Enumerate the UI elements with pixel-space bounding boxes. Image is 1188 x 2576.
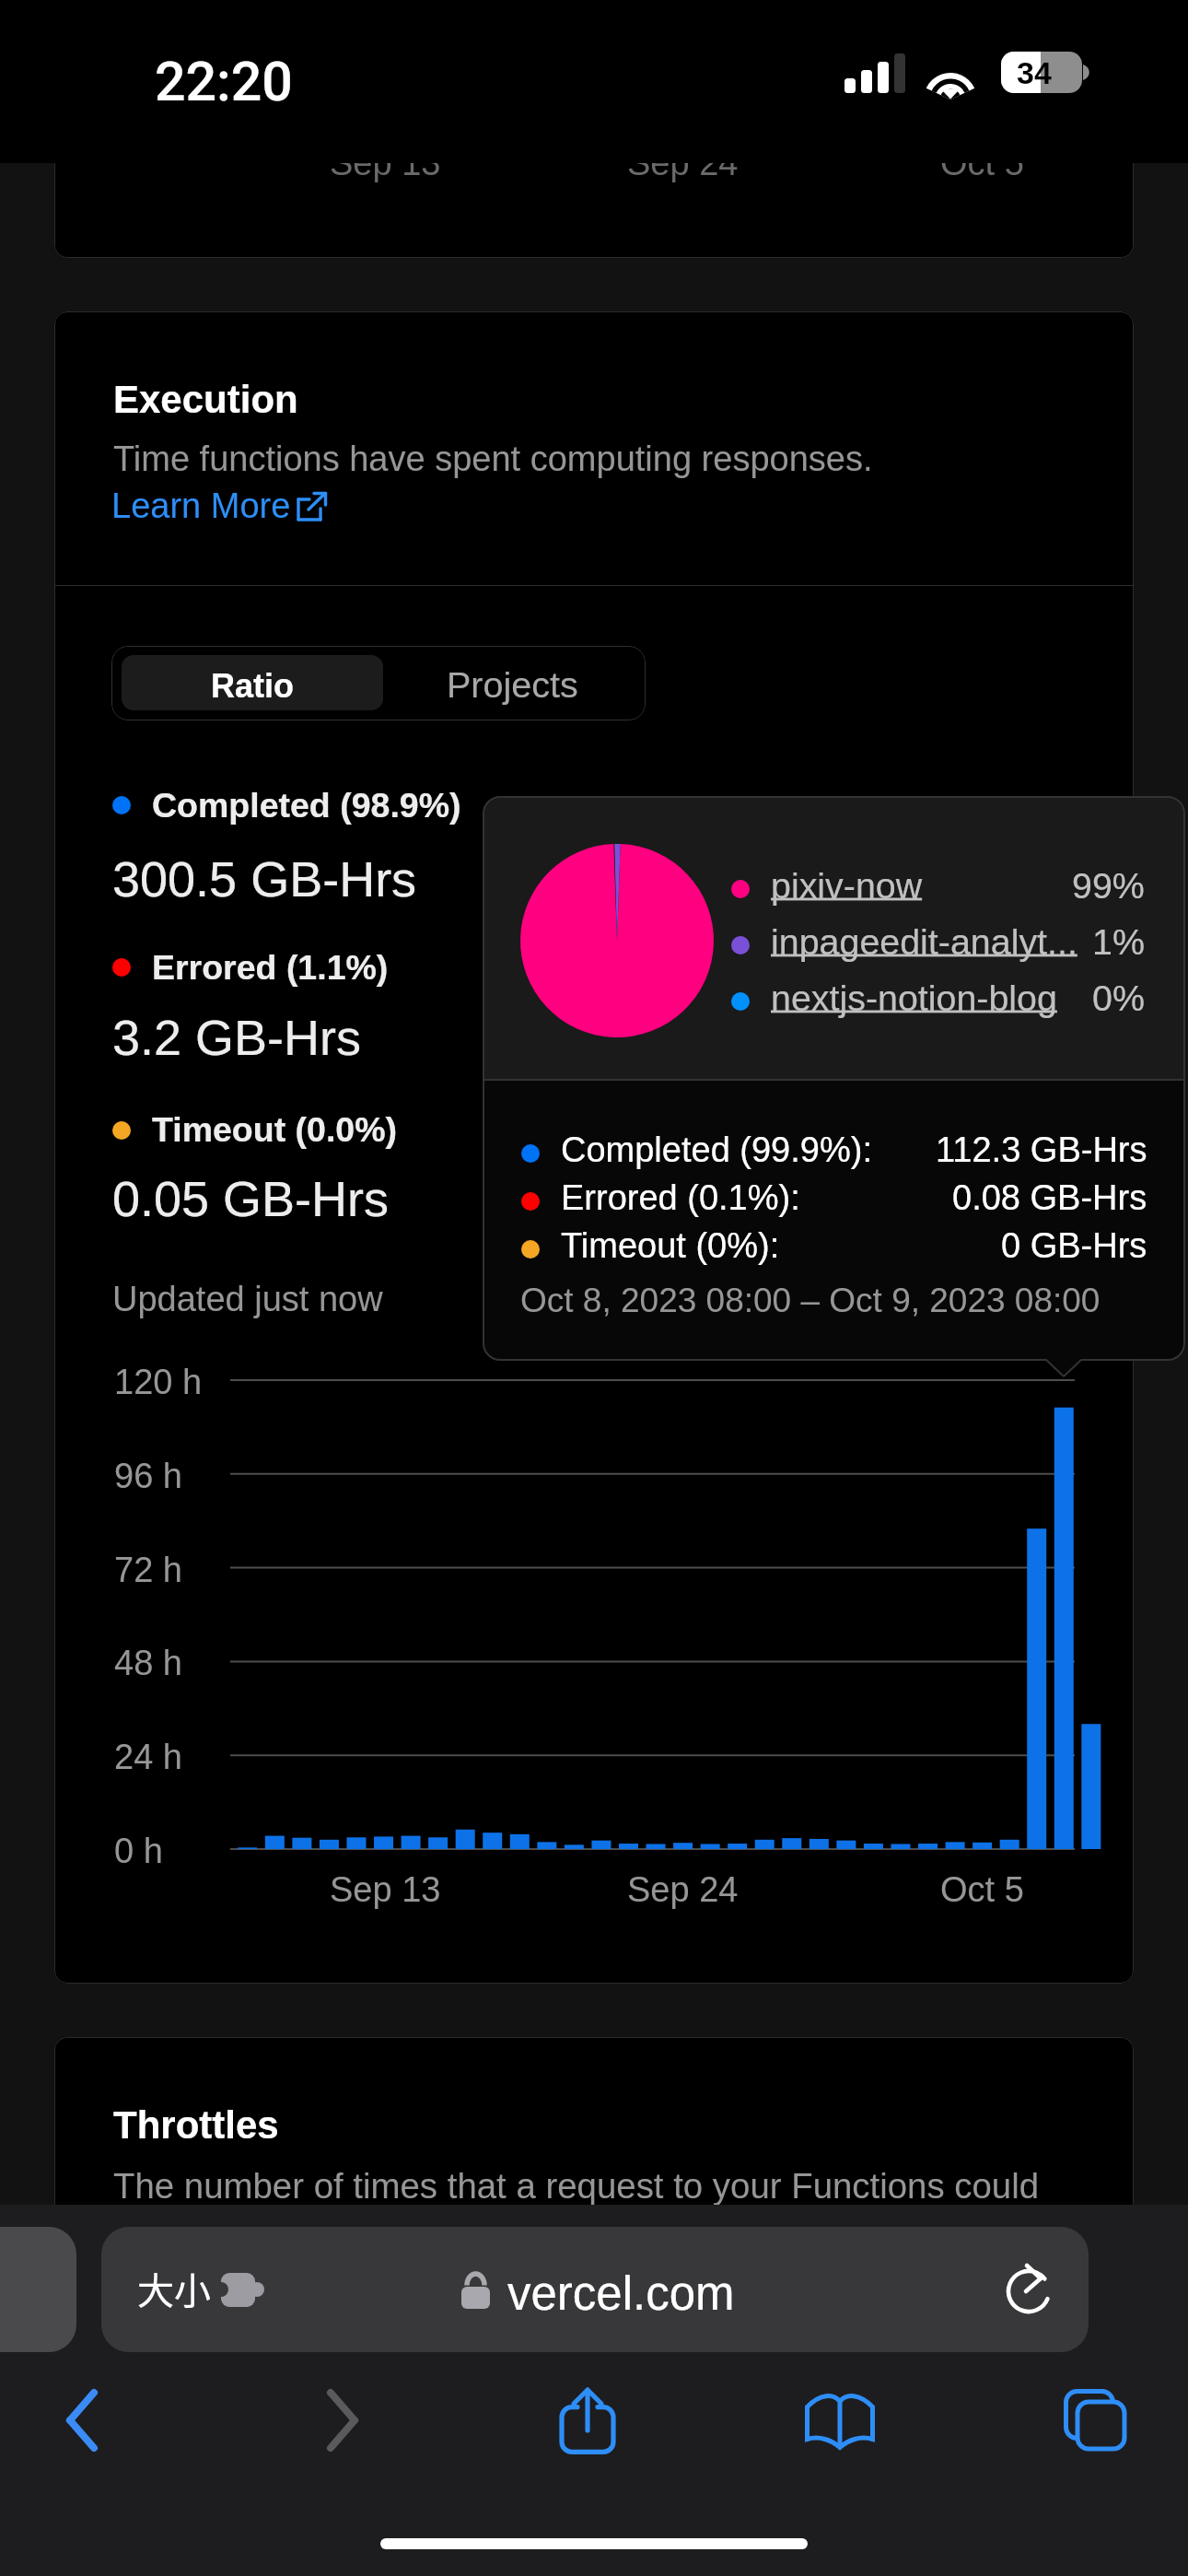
staticText: 0 GB-Hrs (1001, 1226, 1147, 1265)
button[interactable]: Tabs (1038, 2369, 1152, 2472)
staticText: Completed (98.9%) (152, 786, 461, 825)
staticText: Execution (113, 378, 298, 421)
staticText: 1% (1092, 921, 1145, 962)
staticText: Throttles (113, 2103, 279, 2147)
button[interactable]: Back (28, 2369, 142, 2472)
staticText: 0 h (114, 1832, 163, 1870)
staticText: Learn More (111, 486, 291, 525)
staticText: Sep 13 (330, 1870, 441, 1909)
staticText: Errored (0.1%): (561, 1178, 800, 1217)
staticText: 99% (1072, 865, 1145, 906)
staticText: 96 h (114, 1457, 182, 1495)
staticText: Sep 13 (330, 144, 441, 182)
button[interactable]: Forward (283, 2369, 397, 2472)
staticText: 34 (1017, 55, 1052, 90)
button[interactable]: Share (530, 2369, 645, 2472)
staticText: Time functions have spent computing resp… (113, 439, 873, 478)
staticText: Completed (99.9%): (561, 1130, 872, 1169)
staticText: Errored (1.1%) (152, 948, 389, 987)
staticText: 24 h (114, 1738, 182, 1776)
staticText: 120 h (114, 1363, 203, 1401)
staticText: 48 h (114, 1644, 182, 1682)
staticText: Projects (447, 664, 578, 705)
button[interactable]: Learn More (111, 486, 330, 525)
staticText: 112.3 GB-Hrs (936, 1130, 1147, 1169)
staticText: vercel.com (507, 2267, 735, 2320)
staticText: Timeout (0%): (561, 1226, 780, 1265)
staticText: Oct 5 (940, 1870, 1024, 1909)
staticText: pixiv-now (771, 865, 923, 906)
staticText: 0.08 GB-Hrs (952, 1178, 1147, 1217)
staticText: Sep 24 (627, 1870, 739, 1909)
staticText: 22:20 (155, 50, 293, 113)
staticText: Updated just now (112, 1280, 383, 1318)
button[interactable]: Projects (383, 655, 645, 710)
staticText: 72 h (114, 1551, 182, 1589)
button[interactable]: Reload (987, 2245, 1077, 2336)
staticText: 大小 (137, 2262, 211, 2315)
staticText: 300.5 GB-Hrs (112, 851, 417, 907)
button[interactable]: 大小 (101, 2227, 1089, 2352)
staticText: The number of times that a request to yo… (113, 2166, 1040, 2206)
staticText: Timeout (0.0%) (152, 1110, 398, 1149)
staticText: Ratio (211, 667, 294, 704)
staticText: Oct 5 (940, 144, 1024, 182)
button[interactable]: Bookmarks (783, 2369, 897, 2472)
staticText: 0% (1092, 978, 1145, 1018)
staticText: inpageedit-analyt... (771, 921, 1077, 962)
button[interactable]: Previous tab (0, 2227, 76, 2352)
button[interactable]: Ratio (122, 655, 383, 710)
staticText: nextjs-notion-blog (771, 978, 1057, 1018)
staticText: 3.2 GB-Hrs (112, 1010, 362, 1065)
staticText: 0.05 GB-Hrs (112, 1171, 390, 1226)
staticText: Oct 8, 2023 08:00 – Oct 9, 2023 08:00 (520, 1282, 1101, 1319)
staticText: Sep 24 (627, 144, 739, 182)
